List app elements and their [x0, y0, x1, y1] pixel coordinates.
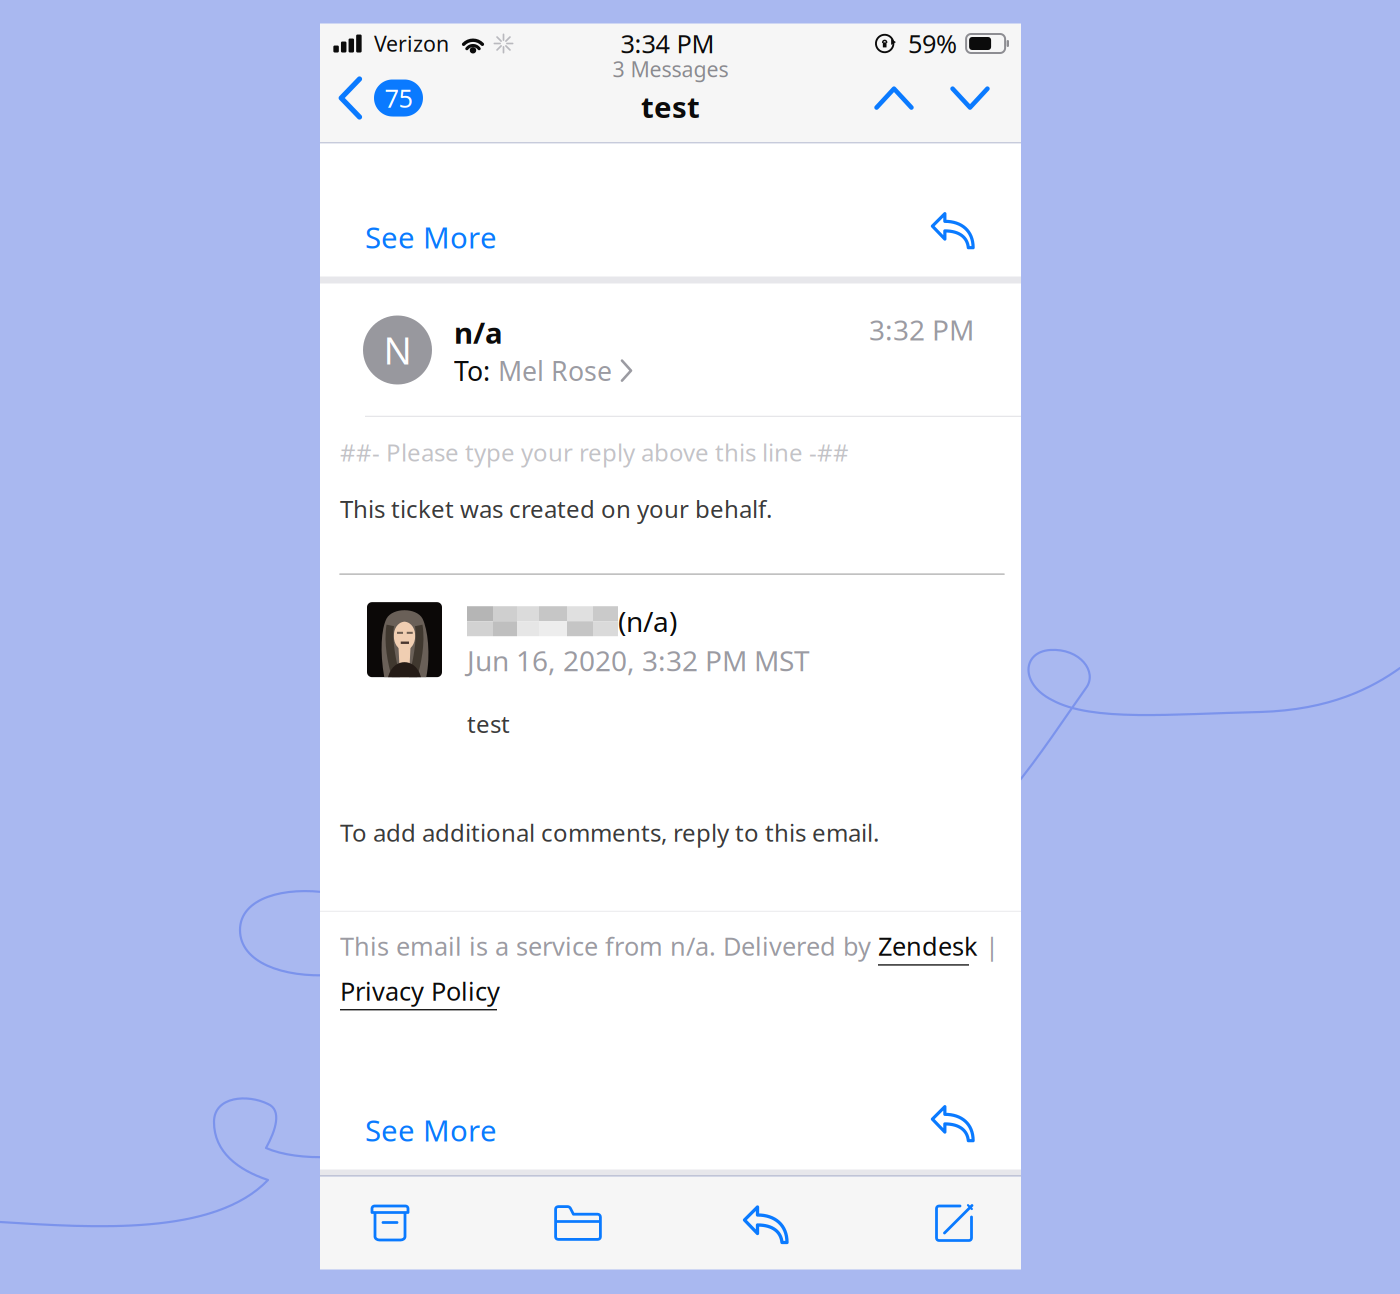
button[interactable]: See More	[320, 197, 1021, 276]
button[interactable]: See More	[320, 1090, 1021, 1169]
staticText: Privacy Policy	[340, 974, 500, 1008]
staticText: This ticket was created on your behalf.	[340, 492, 772, 525]
staticText: Verizon	[374, 29, 449, 58]
staticText: This email is a service from n/a. Delive…	[340, 929, 878, 963]
staticText: To:	[454, 352, 490, 389]
button[interactable]: Compose	[902, 1192, 1006, 1254]
staticText: |	[978, 929, 999, 963]
button[interactable]: Previous message	[856, 75, 932, 120]
staticText: Zendesk	[878, 929, 978, 963]
staticText: 3:32 PM	[869, 310, 974, 349]
button[interactable]: Next message	[932, 75, 1008, 120]
button[interactable]: 75	[322, 70, 439, 126]
staticText: 3:34 PM	[620, 26, 714, 61]
staticText: 75	[384, 81, 412, 115]
button[interactable]: Reply	[714, 1192, 818, 1254]
button[interactable]: Move to folder	[526, 1192, 630, 1254]
button[interactable]: Zendesk	[878, 929, 978, 966]
staticText: Jun 16, 2020, 3:32 PM MST	[467, 641, 810, 679]
staticText: test	[641, 87, 700, 127]
staticText: 3 Messages	[612, 54, 728, 84]
staticText: To add additional comments, reply to thi…	[340, 816, 879, 849]
staticText: 59%	[908, 26, 957, 61]
staticText: n/a	[454, 312, 503, 352]
button[interactable]: Privacy Policy	[340, 974, 500, 1010]
staticText: ##- Please type your reply above this li…	[340, 436, 849, 468]
staticText: (n/a)	[618, 602, 677, 640]
staticText: See More	[365, 217, 497, 257]
staticText: Mel Rose	[498, 352, 612, 389]
staticText: See More	[365, 1110, 497, 1150]
staticText: test	[467, 707, 510, 740]
button[interactable]: To:	[454, 352, 633, 389]
button[interactable]: Archive	[338, 1192, 442, 1254]
staticText: N	[383, 325, 411, 375]
